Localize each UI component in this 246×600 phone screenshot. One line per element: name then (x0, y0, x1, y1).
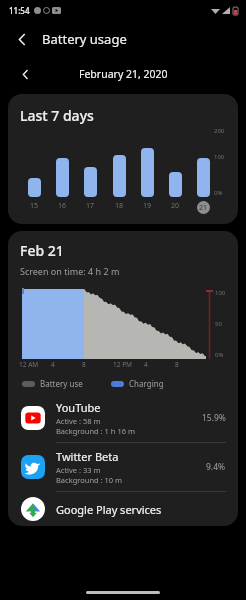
staticText: 50 (215, 320, 222, 328)
staticText: 12 PM (113, 360, 132, 369)
staticText: 17 (86, 201, 95, 211)
staticText: 21 (199, 203, 208, 213)
staticText: 0% (215, 351, 224, 359)
staticText: Active : 58 m (56, 416, 101, 426)
button[interactable]: YouTube (8, 394, 238, 442)
staticText: 0% (214, 189, 223, 197)
staticText: Battery use (40, 378, 83, 389)
staticText: Charging (129, 378, 164, 389)
staticText: 12 AM (19, 360, 39, 369)
staticText: 19 (143, 201, 152, 211)
staticText: February 21, 2020 (79, 67, 168, 81)
staticText: Feb 21 (20, 241, 64, 260)
staticText: YouTube (56, 400, 101, 415)
staticText: 15.9% (202, 412, 226, 424)
staticText: Google Play services (56, 502, 162, 517)
staticText: 18 (115, 201, 124, 211)
staticText: 11:54 (9, 5, 30, 16)
button[interactable]: Previous day (16, 65, 34, 83)
staticText: Background : 1 h 16 m (56, 426, 135, 436)
staticText: Active : 33 m (56, 465, 101, 475)
staticText: 20 (171, 201, 180, 211)
staticText: Background : 10 m (56, 475, 123, 485)
staticText: Battery usage (42, 30, 127, 48)
staticText: 100 (215, 289, 226, 297)
button[interactable]: Twitter Beta (8, 443, 238, 491)
staticText: 8 (175, 360, 179, 369)
button[interactable]: Back (12, 29, 32, 49)
staticText: 8 (82, 360, 86, 369)
staticText: 15 (30, 201, 39, 211)
staticText: 4 (51, 360, 55, 369)
staticText: 9.4% (206, 461, 226, 473)
staticText: 16 (58, 201, 67, 211)
staticText: Twitter Beta (56, 449, 119, 464)
button[interactable]: Last 7 days (8, 94, 238, 224)
staticText: 4 (144, 360, 148, 369)
staticText: Screen on time: 4 h 2 m (20, 265, 120, 277)
button[interactable]: Google Play services (8, 492, 238, 526)
staticText: 100 (214, 153, 225, 161)
staticText: Last 7 days (20, 106, 94, 125)
staticText: 200 (214, 127, 225, 135)
